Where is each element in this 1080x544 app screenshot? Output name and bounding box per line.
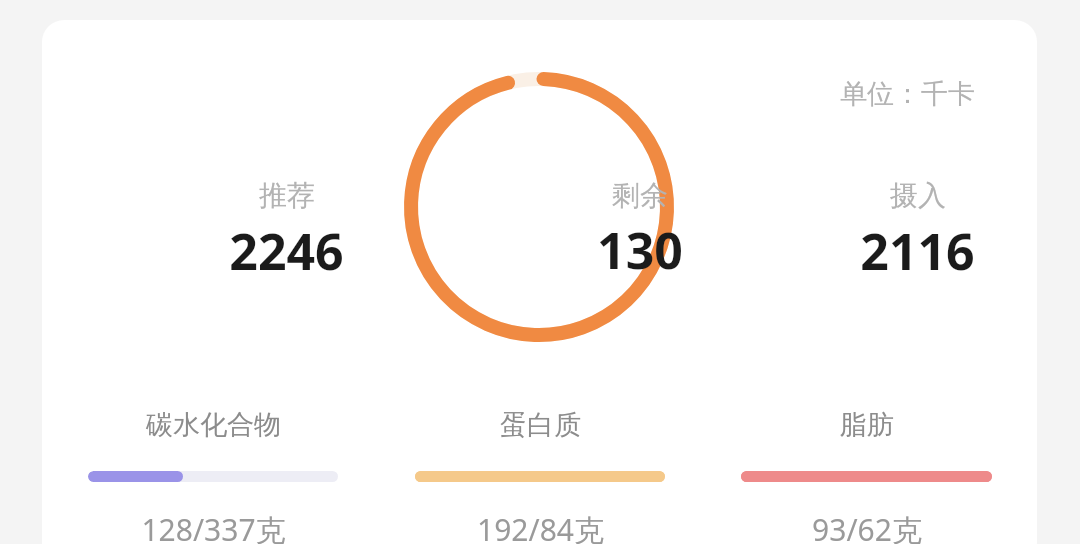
staticText: 2116 xyxy=(860,217,975,280)
staticText: 130 xyxy=(597,216,683,284)
staticText: 单位：千卡 xyxy=(840,77,975,111)
staticText: 蛋白质 xyxy=(500,408,581,442)
button[interactable]: 蛋白质 xyxy=(415,408,665,544)
button[interactable]: 碳水化合物 xyxy=(88,408,338,544)
staticText: 93/62克 xyxy=(812,509,922,544)
button[interactable] xyxy=(398,66,680,348)
staticText: 碳水化合物 xyxy=(146,408,281,442)
staticText: 剩余 xyxy=(612,178,668,213)
button[interactable]: 脂肪 xyxy=(741,408,992,544)
staticText: 192/84克 xyxy=(477,509,604,544)
staticText: 摄入 xyxy=(890,178,946,213)
staticText: 2246 xyxy=(229,217,344,280)
staticText: 推荐 xyxy=(259,178,315,213)
staticText: 128/337克 xyxy=(141,509,286,544)
button[interactable]: 摄入 xyxy=(795,170,1037,280)
button[interactable]: 单位：千卡 xyxy=(42,20,1037,544)
button[interactable]: 推荐 xyxy=(164,170,409,280)
staticText: 脂肪 xyxy=(840,408,894,442)
